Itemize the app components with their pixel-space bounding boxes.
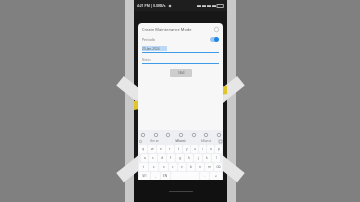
staticText: d — [161, 156, 163, 160]
staticText: Periodic — [142, 37, 156, 42]
button[interactable]: Periodic toggle — [210, 37, 219, 42]
staticText: v — [181, 165, 183, 169]
staticText: g — [179, 156, 181, 160]
button[interactable]: m — [205, 163, 213, 171]
staticText: x — [163, 165, 165, 169]
staticText: ⇧ — [142, 165, 145, 169]
staticText: i — [202, 147, 203, 151]
button[interactable]: ↵ — [210, 172, 222, 180]
button[interactable]: Emoji — [139, 131, 146, 138]
staticText: e — [160, 147, 162, 151]
button[interactable]: Periodic — [142, 37, 219, 42]
button[interactable]: w — [148, 145, 156, 153]
button[interactable]: Create Maintenance Mode — [142, 27, 219, 32]
button[interactable]: e — [157, 145, 165, 153]
button[interactable]: Close — [214, 27, 219, 32]
button[interactable]: ⇧ — [139, 163, 148, 171]
button[interactable]: p — [215, 145, 222, 153]
staticText: Notes — [142, 58, 151, 62]
staticText: q — [142, 147, 144, 151]
staticText: . — [204, 174, 205, 178]
button[interactable]: x — [159, 163, 168, 171]
staticText: r — [169, 147, 171, 151]
button[interactable]: bKunst — [167, 138, 193, 144]
staticText: SAVE — [178, 71, 185, 75]
staticText: n — [199, 165, 201, 169]
button[interactable]: z — [149, 163, 158, 171]
button[interactable]: bKunst — [193, 138, 219, 144]
staticText: z — [153, 165, 155, 169]
button[interactable]: c — [169, 163, 177, 171]
staticText: bKunst — [175, 139, 186, 143]
button[interactable]: !#1 — [139, 172, 150, 180]
button[interactable]: q — [139, 145, 147, 153]
button[interactable]: v — [178, 163, 186, 171]
staticText: p — [218, 147, 220, 151]
button[interactable]: t — [175, 145, 182, 153]
button[interactable]: j — [194, 154, 202, 162]
staticText: 20-Jan-2024 — [142, 47, 160, 51]
button[interactable]: Notes — [142, 57, 219, 64]
button[interactable]: Sticker — [190, 131, 197, 138]
button[interactable]: , — [151, 172, 160, 180]
button[interactable]: l — [212, 154, 220, 162]
button[interactable]: r — [166, 145, 174, 153]
staticText: b — [190, 165, 192, 169]
button[interactable]: Translate — [177, 131, 184, 138]
button[interactable]: Settings — [164, 131, 171, 138]
button[interactable]: More — [215, 131, 222, 138]
button[interactable]: SAVE — [170, 69, 192, 77]
button[interactable]: ⌫ — [214, 163, 222, 171]
staticText: f — [170, 156, 172, 160]
button[interactable]: Theme — [202, 131, 209, 138]
button[interactable]: o — [207, 145, 214, 153]
staticText: bKunst — [201, 139, 211, 143]
staticText: u — [194, 147, 196, 151]
button[interactable]: i — [199, 145, 206, 153]
button[interactable]: n — [196, 163, 204, 171]
button[interactable]: the se — [142, 138, 167, 144]
staticText: Create Maintenance Mode — [142, 27, 192, 32]
button[interactable]: f — [167, 154, 175, 162]
button[interactable]: a — [141, 154, 148, 162]
staticText: m — [208, 165, 211, 169]
staticText: ↵ — [215, 174, 218, 178]
button[interactable]: b — [187, 163, 195, 171]
button[interactable]: Clipboard — [152, 131, 159, 138]
button[interactable]: u — [191, 145, 198, 153]
staticText: EN — [163, 174, 168, 178]
staticText: t — [178, 147, 180, 151]
staticText: a — [144, 156, 146, 160]
staticText: k — [206, 156, 208, 160]
staticText: c — [172, 165, 174, 169]
button[interactable]: d — [158, 154, 166, 162]
staticText: j — [198, 156, 199, 160]
staticText: s — [152, 156, 154, 160]
staticText: the se — [150, 139, 159, 143]
staticText: l — [216, 156, 217, 160]
staticText: y — [186, 147, 188, 151]
button[interactable]: h — [185, 154, 193, 162]
button[interactable]: g — [176, 154, 184, 162]
staticText: w — [151, 147, 154, 151]
staticText: h — [188, 156, 190, 160]
button[interactable]: EN — [161, 172, 170, 180]
button[interactable]: y — [183, 145, 190, 153]
staticText: o — [210, 147, 212, 151]
button[interactable]: 20-Jan-2024 — [142, 46, 219, 53]
staticText: !#1 — [142, 174, 147, 178]
button[interactable]: s — [149, 154, 157, 162]
staticText: , — [155, 174, 156, 178]
staticText: 4:21 PM | 0.0KB/s — [137, 3, 166, 8]
staticText: ⌫ — [216, 165, 221, 169]
button[interactable]: k — [203, 154, 211, 162]
